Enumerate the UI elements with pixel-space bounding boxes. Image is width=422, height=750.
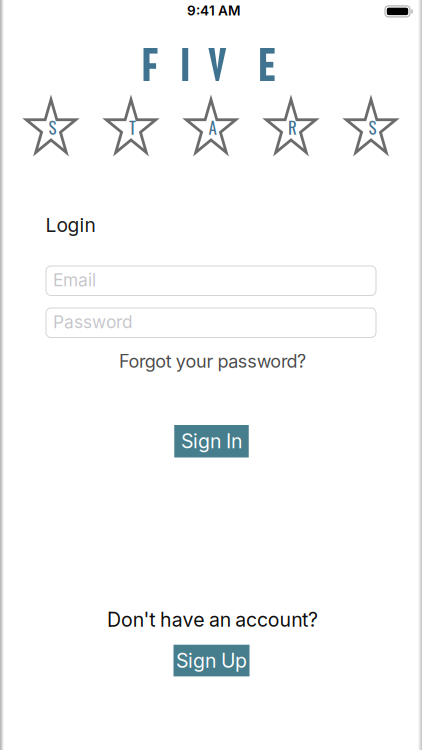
staticText: Sign In — [181, 429, 242, 453]
staticText: Don't have an account? — [107, 608, 318, 631]
button[interactable]: Password — [46, 308, 376, 337]
staticText: Forgot your password? — [119, 350, 306, 372]
staticText: A — [208, 115, 216, 140]
staticText: S — [368, 115, 376, 140]
staticText: R — [288, 115, 297, 140]
staticText: Sign Up — [176, 649, 247, 672]
button[interactable]: Email — [46, 266, 376, 295]
staticText: S — [48, 115, 56, 140]
staticText: Login — [45, 213, 95, 237]
staticText: Password — [53, 312, 133, 332]
button[interactable]: Forgot your password? — [119, 350, 306, 372]
staticText: Email — [53, 270, 96, 290]
button[interactable]: Sign Up — [173, 645, 249, 676]
staticText: 9:41 AM — [187, 2, 241, 19]
staticText: T — [129, 115, 136, 140]
button[interactable]: Sign In — [174, 425, 249, 457]
